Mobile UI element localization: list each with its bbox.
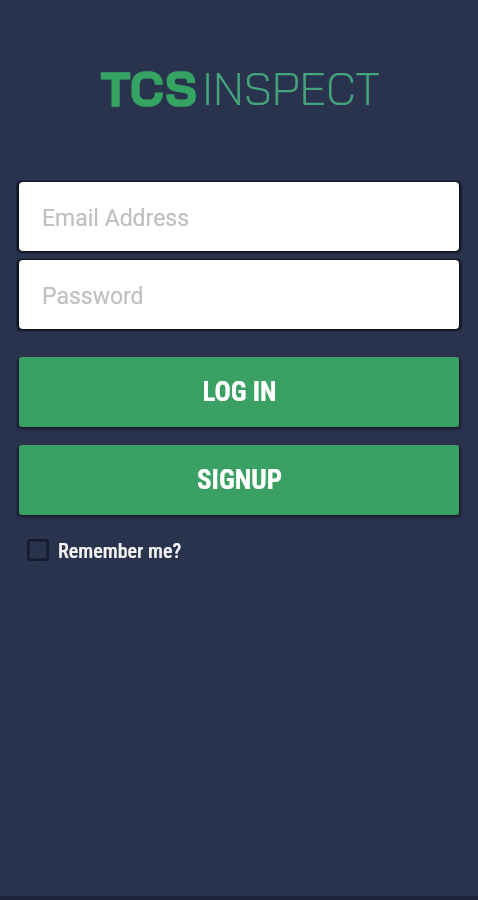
staticText: SIGNUP (197, 464, 282, 496)
staticText: TCS (101, 58, 199, 118)
button[interactable]: Password (19, 260, 459, 329)
staticText: Email Address (42, 205, 190, 232)
staticText: INSPECT (202, 60, 381, 116)
button[interactable]: Email Address (19, 182, 459, 251)
staticText: LOG IN (202, 376, 277, 408)
button[interactable]: LOG IN (19, 357, 459, 427)
staticText: Password (42, 283, 144, 310)
button[interactable]: SIGNUP (19, 445, 459, 515)
staticText: Remember me? (58, 539, 182, 562)
button[interactable]: Remember me checkbox (27, 539, 49, 561)
